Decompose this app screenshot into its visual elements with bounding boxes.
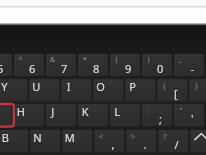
button[interactable]: On-screen keyboard bbox=[0, 0, 206, 155]
